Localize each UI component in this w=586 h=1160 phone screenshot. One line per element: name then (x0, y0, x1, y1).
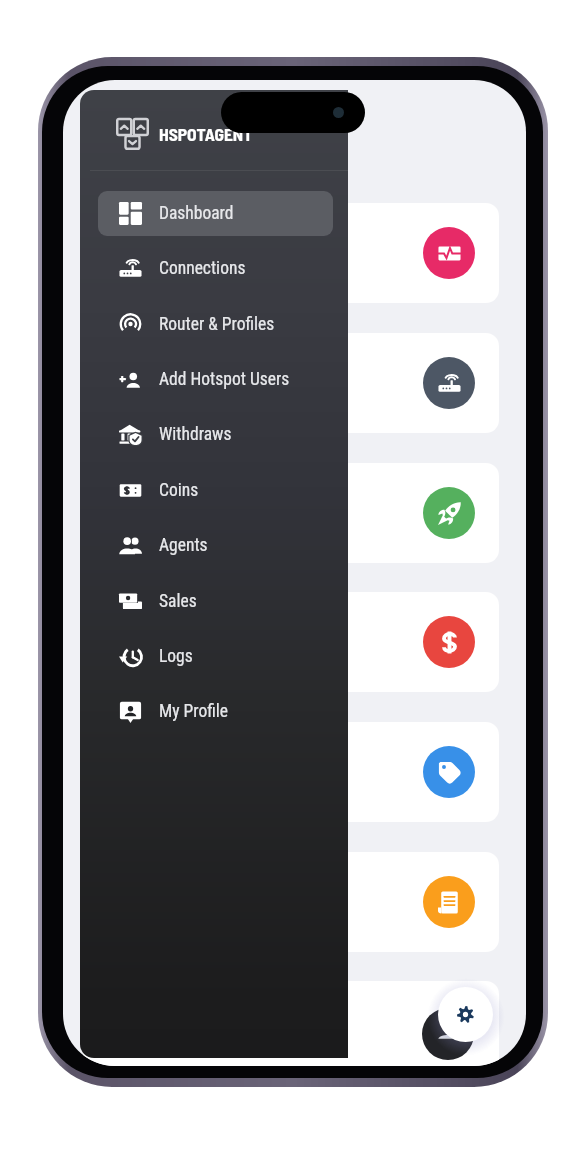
button[interactable]: Coins (98, 468, 333, 513)
button[interactable]: Router & Profiles (98, 302, 333, 347)
staticText: Dashboard (159, 203, 234, 224)
staticText: Sales (159, 591, 197, 612)
staticText: My Profile (159, 701, 228, 722)
button[interactable] (83, 722, 499, 822)
button[interactable] (83, 463, 499, 563)
staticText: Connections (159, 258, 246, 279)
staticText: Add Hotspot Users (159, 369, 290, 390)
staticText: Withdraws (159, 424, 232, 445)
button[interactable] (83, 981, 499, 1066)
button[interactable]: Agents (98, 523, 333, 568)
button[interactable]: Logs (98, 634, 333, 679)
button[interactable]: Dashboard (98, 191, 333, 236)
button[interactable] (83, 333, 499, 433)
staticText: Coins (159, 480, 199, 501)
staticText: Agents (159, 535, 208, 556)
button[interactable]: Sales (98, 579, 333, 624)
staticText: Router & Profiles (159, 314, 275, 335)
button[interactable]: Support chat (422, 1008, 474, 1060)
button[interactable] (83, 592, 499, 692)
button[interactable]: My Profile (98, 689, 333, 734)
button[interactable]: Withdraws (98, 412, 333, 457)
button[interactable]: Connections (98, 246, 333, 291)
button[interactable] (83, 203, 499, 303)
button[interactable] (83, 852, 499, 952)
button[interactable]: Settings (438, 987, 493, 1042)
staticText: HSPOTAGENT (159, 123, 253, 144)
staticText: Logs (159, 646, 193, 667)
button[interactable]: Add Hotspot Users (98, 357, 333, 402)
